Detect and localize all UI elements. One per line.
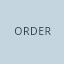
staticText: ORDER — [14, 24, 52, 38]
button[interactable]: ORDER — [0, 0, 64, 64]
